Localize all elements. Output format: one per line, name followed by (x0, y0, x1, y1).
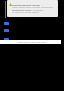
button[interactable]: Action (4, 38, 9, 41)
staticText: ut labore et dolore magna (12, 11, 39, 14)
staticText: some footer text goes here (18, 41, 46, 44)
staticText: Something went wrong (12, 3, 40, 6)
button[interactable]: Something went wrong (7, 0, 58, 17)
staticText: do eiusmod tempor incididunt (12, 9, 44, 12)
button[interactable]: Action (4, 22, 9, 25)
button[interactable]: Action (4, 29, 9, 32)
staticText: Lorem ipsum dolor sit amet consectetur a… (12, 6, 58, 12)
